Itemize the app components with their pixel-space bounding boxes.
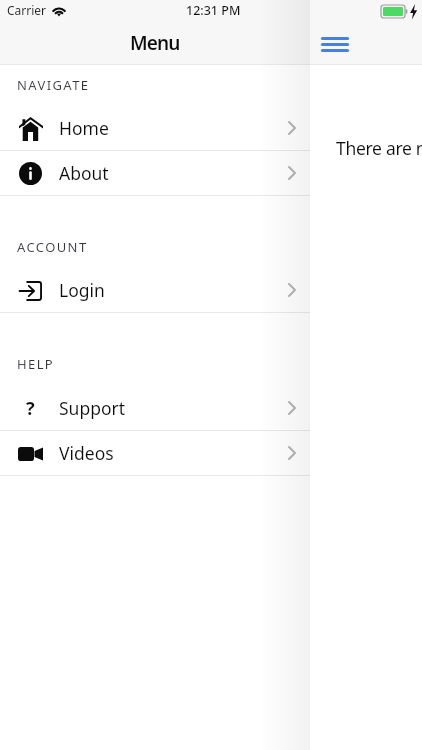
staticText: Carrier <box>7 2 47 18</box>
button[interactable]: Open navigation menu <box>317 28 353 64</box>
button[interactable]: Videos <box>0 431 310 475</box>
staticText: ACCOUNT <box>17 238 88 256</box>
button[interactable]: Login <box>0 268 310 312</box>
staticText: Support <box>59 396 126 420</box>
staticText: Home <box>59 116 109 140</box>
staticText: About <box>59 161 109 185</box>
staticText: Login <box>59 278 105 302</box>
button[interactable]: About <box>0 151 310 195</box>
staticText: ? <box>26 396 35 421</box>
button[interactable]: ? <box>0 386 310 430</box>
staticText: NAVIGATE <box>17 76 90 94</box>
staticText: Videos <box>59 441 114 465</box>
staticText: 12:31 PM <box>186 2 241 19</box>
staticText: HELP <box>17 355 55 373</box>
button[interactable]: Home <box>0 106 310 150</box>
staticText: Menu <box>130 30 180 56</box>
staticText: There are no items <box>336 136 422 160</box>
